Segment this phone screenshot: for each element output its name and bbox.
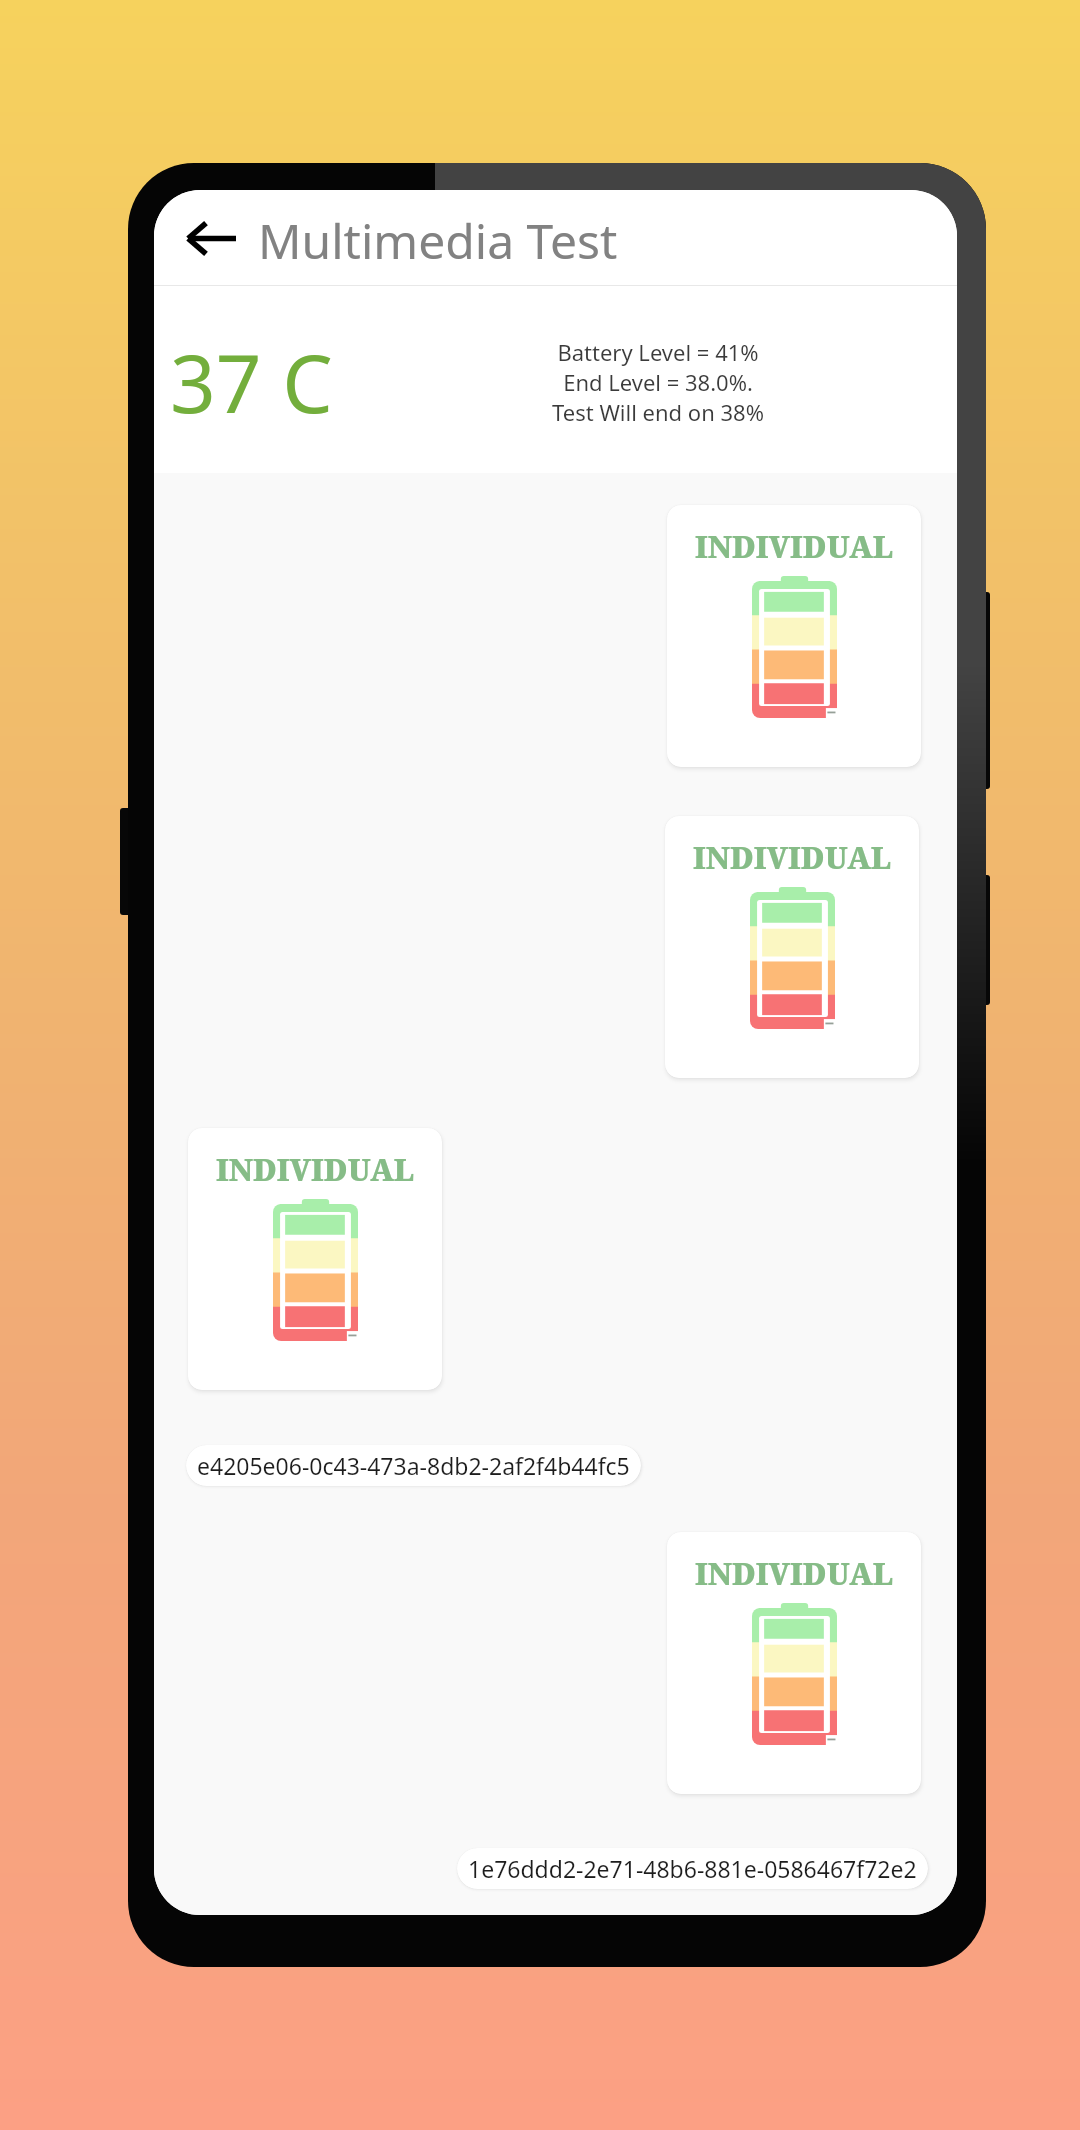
staticText: INDIVIDUAL [693, 837, 892, 878]
button[interactable]: INDIVIDUAL [667, 505, 921, 767]
button[interactable]: 1e76ddd2-2e71-48b6-881e-0586467f72e2 [457, 1848, 928, 1889]
button[interactable]: Back [174, 201, 248, 275]
button[interactable]: INDIVIDUAL [665, 816, 919, 1078]
button[interactable]: INDIVIDUAL [667, 1532, 921, 1794]
staticText: Test Will end on 38% [552, 397, 764, 427]
staticText: 37 C [170, 327, 333, 436]
staticText: INDIVIDUAL [695, 1553, 894, 1594]
staticText: 1e76ddd2-2e71-48b6-881e-0586467f72e2 [468, 1853, 917, 1884]
staticText: End Level = 38.0%. [563, 367, 753, 397]
staticText: INDIVIDUAL [695, 526, 894, 567]
staticText: INDIVIDUAL [216, 1149, 415, 1190]
staticText: Battery Level = 41% [557, 337, 759, 367]
staticText: Multimedia Test [258, 208, 618, 273]
staticText: e4205e06-0c43-473a-8db2-2af2f4b44fc5 [197, 1450, 630, 1481]
button[interactable]: INDIVIDUAL [188, 1128, 442, 1390]
button[interactable]: e4205e06-0c43-473a-8db2-2af2f4b44fc5 [186, 1445, 641, 1486]
